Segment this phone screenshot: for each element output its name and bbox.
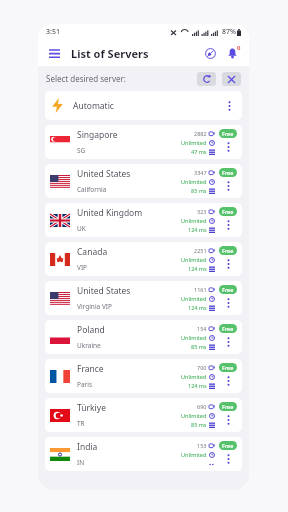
staticText: 87% [222,27,236,37]
button[interactable]: Refresh server list [197,72,216,86]
button[interactable]: Canada [45,242,242,276]
staticText: Select desired server: [46,73,126,84]
button[interactable]: Open navigation menu [46,45,62,61]
button[interactable]: Free [219,168,237,177]
staticText: Unlimited [181,334,207,341]
button[interactable]: Türkiye [45,398,242,432]
staticText: 85 ms [191,187,207,194]
button[interactable]: More options [223,412,234,428]
staticText: 0 [237,44,241,52]
button[interactable]: Poland [45,320,242,354]
button[interactable]: More options [223,373,234,389]
staticText: Free [222,403,234,410]
staticText: Free [222,208,234,215]
staticText: India [77,441,98,453]
staticText: UK [77,224,86,233]
staticText: 3347 [194,169,207,176]
staticText: 2251 [194,247,207,254]
staticText: TR [77,419,85,428]
button[interactable]: Free [219,285,237,294]
staticText: Paris [77,380,93,389]
button[interactable]: More options [223,217,234,233]
button[interactable]: More options [224,98,235,114]
button[interactable]: Free [219,363,237,372]
staticText: 1161 [194,286,207,293]
button[interactable]: Singapore [45,125,242,159]
staticText: United States [77,285,131,297]
button[interactable]: Clear filter [222,72,241,86]
staticText: 85 ms [191,421,207,428]
button[interactable]: Notifications [223,44,241,62]
staticText: Unlimited [181,139,207,146]
staticText: 85 ms [191,343,207,350]
staticText: 690 [197,403,207,410]
staticText: Singapore [77,129,118,141]
staticText: 154 [197,325,207,332]
staticText: Free [222,364,234,371]
staticText: Unlimited [181,451,207,458]
button[interactable]: United States [45,164,242,198]
button[interactable]: More options [223,256,234,272]
staticText: Ukraine [77,341,101,350]
staticText: 3:51 [46,27,60,37]
staticText: VIP [77,263,88,272]
staticText: Free [222,247,234,254]
staticText: Unlimited [181,178,207,185]
button[interactable]: United States [45,281,242,315]
staticText: 124 ms [188,226,207,233]
staticText: Poland [77,324,105,336]
button[interactable]: More options [223,139,234,155]
staticText: SG [77,146,86,155]
staticText: Free [222,169,234,176]
staticText: 47 ms [191,148,207,155]
staticText: Free [222,325,234,332]
staticText: Automatic [73,100,114,112]
staticText: Türkiye [77,402,106,414]
staticText: Unlimited [181,256,207,263]
button[interactable]: India [45,437,242,471]
staticText: Canada [77,246,108,258]
button[interactable]: More options [223,295,234,311]
staticText: Unlimited [181,412,207,419]
staticText: Unlimited [181,217,207,224]
staticText: 153 [197,442,207,449]
staticText: France [77,363,104,375]
staticText: Unlimited [181,295,207,302]
staticText: United Kingdom [77,207,143,219]
button[interactable]: Automatic [45,91,242,120]
staticText: Virginia VIP [77,302,112,311]
button[interactable]: More options [223,178,234,194]
button[interactable]: Free [219,129,237,138]
staticText: 124 ms [188,382,207,389]
button[interactable]: Connection status [202,45,218,61]
button[interactable]: More options [223,334,234,350]
button[interactable]: Free [219,246,237,255]
staticText: 323 [197,208,207,215]
staticText: Free [222,442,234,449]
staticText: 2882 [194,130,207,137]
button[interactable]: United Kingdom [45,203,242,237]
staticText: 124 ms [188,304,207,311]
staticText: Free [222,286,234,293]
staticText: Unlimited [181,373,207,380]
button[interactable]: France [45,359,242,393]
button[interactable]: Free [219,324,237,333]
button[interactable]: Free [219,207,237,216]
staticText: California [77,185,107,194]
button[interactable]: More options [223,451,234,467]
staticText: IN [77,458,85,467]
staticText: List of Servers [71,46,149,61]
button[interactable]: Free [219,441,237,450]
staticText: United States [77,168,131,180]
staticText: 700 [197,364,207,371]
staticText: Free [222,130,234,137]
staticText: 124 ms [188,265,207,272]
button[interactable]: Free [219,402,237,411]
